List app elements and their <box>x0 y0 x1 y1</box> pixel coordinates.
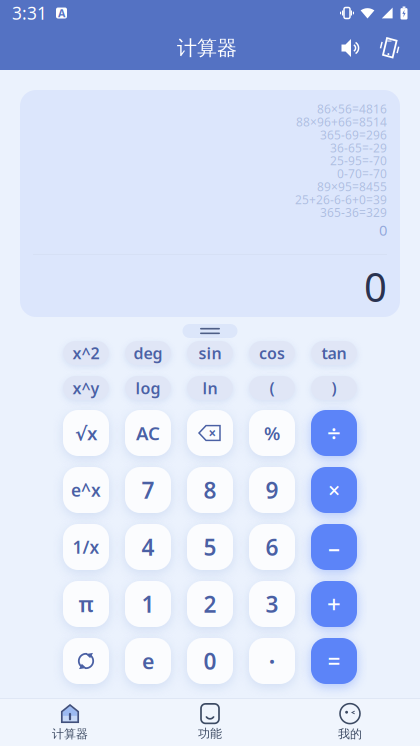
staticText: 8 <box>203 475 216 505</box>
button[interactable]: Sound <box>333 26 371 70</box>
button[interactable]: 4 <box>125 524 171 570</box>
button[interactable]: x^2 <box>63 341 109 365</box>
staticText: 89×95=8455 <box>317 179 387 194</box>
staticText: 7 <box>141 475 154 505</box>
staticText: 0-70=-70 <box>337 166 387 182</box>
button[interactable]: sin <box>187 341 233 365</box>
button[interactable]: % <box>249 410 295 456</box>
staticText: log <box>135 377 160 399</box>
button[interactable]: 0 <box>187 638 233 684</box>
staticText: 36-65=-29 <box>330 140 387 156</box>
staticText: AC <box>136 421 160 445</box>
button[interactable]: √x <box>63 410 109 456</box>
button[interactable]: ln <box>187 376 233 400</box>
button[interactable]: × <box>311 467 357 513</box>
staticText: ln <box>202 377 217 399</box>
staticText: √x <box>75 421 97 445</box>
button[interactable]: + <box>311 581 357 627</box>
button[interactable]: 计算器 <box>0 698 140 746</box>
button[interactable]: 功能 <box>140 698 280 746</box>
staticText: e^x <box>71 478 101 501</box>
staticText: 9 <box>265 475 278 505</box>
staticText: × <box>208 424 216 442</box>
button[interactable]: – <box>311 524 357 570</box>
staticText: 5 <box>203 532 216 562</box>
staticText: ) <box>331 377 336 399</box>
staticText: 0 <box>203 646 216 676</box>
staticText: 1 <box>141 589 154 619</box>
staticText: 0 <box>379 220 387 240</box>
button[interactable]: tan <box>311 341 357 365</box>
button[interactable]: deg <box>125 341 171 365</box>
button[interactable]: 7 <box>125 467 171 513</box>
staticText: 6 <box>265 532 278 562</box>
button[interactable]: e <box>125 638 171 684</box>
staticText: 3 <box>265 589 278 619</box>
button[interactable]: 8 <box>187 467 233 513</box>
staticText: 我的 <box>338 727 362 741</box>
staticText: 25-95=-70 <box>330 153 387 169</box>
button[interactable]: x^y <box>63 376 109 400</box>
staticText: x^y <box>72 377 99 399</box>
button[interactable]: = <box>311 638 357 684</box>
button[interactable]: 2 <box>187 581 233 627</box>
button[interactable]: e^x <box>63 467 109 513</box>
staticText: A <box>58 6 65 20</box>
staticText: × <box>328 476 340 504</box>
staticText: sin <box>198 342 221 364</box>
button[interactable]: 3 <box>249 581 295 627</box>
staticText: – <box>328 531 340 563</box>
staticText: 86×56=4816 <box>317 101 387 117</box>
button[interactable]: 9 <box>249 467 295 513</box>
staticText: e <box>142 647 154 675</box>
staticText: 88×96+66=8514 <box>296 114 387 130</box>
staticText: + <box>327 588 341 620</box>
staticText: deg <box>133 342 162 364</box>
staticText: 功能 <box>198 726 222 741</box>
staticText: 计算器 <box>52 727 88 741</box>
staticText: 365-69=296 <box>320 127 387 143</box>
staticText: tan <box>321 342 346 364</box>
button[interactable]: AC <box>125 410 171 456</box>
button[interactable]: π <box>63 581 109 627</box>
staticText: cos <box>259 342 285 364</box>
button[interactable]: Backspace <box>187 410 233 456</box>
button[interactable]: ) <box>311 376 357 400</box>
staticText: 3:31 <box>12 1 47 24</box>
button[interactable]: 6 <box>249 524 295 570</box>
staticText: 4 <box>141 532 154 562</box>
staticText: = <box>327 646 340 676</box>
button[interactable]: 5 <box>187 524 233 570</box>
button[interactable]: History <box>63 638 109 684</box>
button[interactable]: · <box>249 638 295 684</box>
button[interactable]: log <box>125 376 171 400</box>
staticText: · <box>268 644 275 678</box>
staticText: x^2 <box>72 342 99 364</box>
staticText: 25+26-6-6+0=39 <box>295 191 387 207</box>
staticText: 1/x <box>72 535 99 558</box>
staticText: ÷ <box>327 417 341 449</box>
button[interactable]: 1 <box>125 581 171 627</box>
button[interactable]: 1/x <box>63 524 109 570</box>
button[interactable]: ÷ <box>311 410 357 456</box>
button[interactable]: Shake <box>371 26 409 70</box>
staticText: 2 <box>203 589 216 619</box>
staticText: % <box>264 421 280 445</box>
staticText: π <box>78 590 93 618</box>
button[interactable]: 我的 <box>280 698 420 746</box>
staticText: ( <box>269 377 274 399</box>
button[interactable]: cos <box>249 341 295 365</box>
staticText: 计算器 <box>177 36 237 60</box>
staticText: 365-36=329 <box>320 204 387 220</box>
button[interactable]: ( <box>249 376 295 400</box>
staticText: 0 <box>364 260 387 313</box>
